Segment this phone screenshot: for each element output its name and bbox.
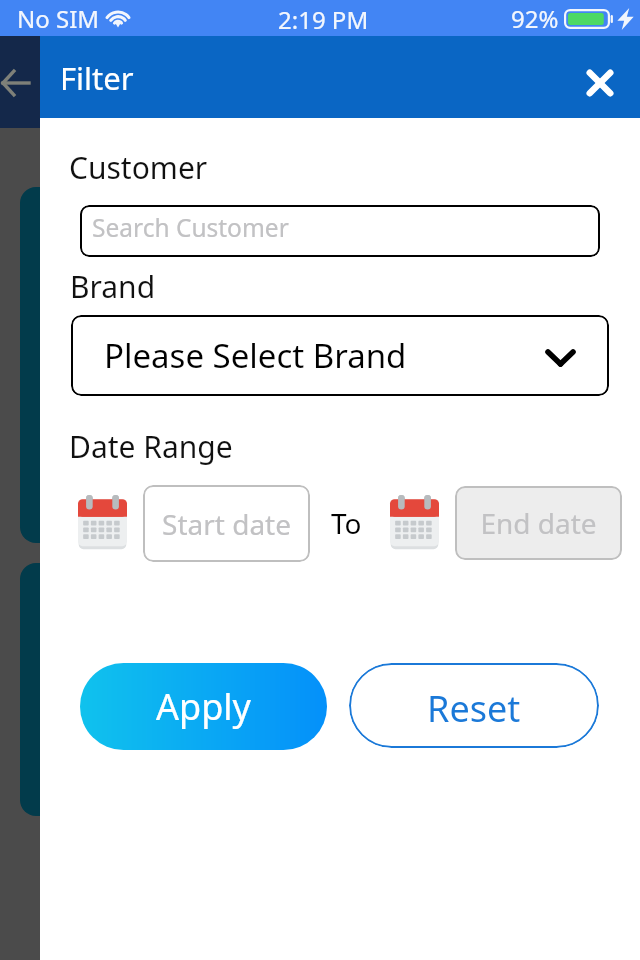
button[interactable]: End date [455, 486, 622, 560]
staticText: Brand [70, 266, 156, 307]
button[interactable]: Back [0, 58, 40, 108]
button[interactable]: Search Customer [80, 205, 600, 257]
staticText: Start date [162, 505, 291, 543]
staticText: Customer [69, 147, 208, 188]
staticText: No SIM [17, 2, 100, 35]
staticText: Reset [427, 684, 521, 733]
button[interactable]: Please Select Brand [71, 315, 609, 396]
staticText: 92% [511, 2, 559, 35]
button[interactable]: Close [575, 58, 625, 108]
staticText: End date [480, 504, 597, 542]
staticText: Filter [60, 57, 134, 99]
button[interactable]: Reset [349, 663, 599, 748]
staticText: Apply [156, 682, 251, 731]
button[interactable]: Apply [80, 663, 327, 750]
staticText: Date Range [69, 426, 233, 467]
staticText: To [331, 504, 362, 542]
staticText: Search Customer [92, 211, 289, 244]
button[interactable]: Start date [143, 485, 310, 562]
staticText: 2:19 PM [278, 3, 369, 36]
staticText: Please Select Brand [104, 333, 407, 378]
